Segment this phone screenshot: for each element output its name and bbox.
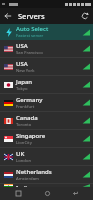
button[interactable]: Auto Select	[0, 24, 93, 40]
staticText: Toronto	[16, 122, 32, 128]
staticText: India	[16, 184, 31, 187]
staticText: New York	[16, 68, 35, 74]
staticText: Germany	[16, 96, 43, 104]
staticText: Frankfurt	[16, 104, 35, 110]
staticText: Servers	[18, 11, 45, 21]
button[interactable]: Japan	[0, 76, 93, 93]
staticText: San Francisco	[16, 50, 43, 56]
staticText: Canada	[16, 114, 38, 122]
button[interactable]: India	[0, 184, 93, 187]
staticText: USA	[16, 60, 28, 68]
button[interactable]: Refresh	[77, 8, 93, 24]
staticText: Singapore	[16, 132, 46, 140]
staticText: London	[16, 158, 32, 164]
button[interactable]: Home	[37, 187, 57, 200]
staticText: USA	[16, 42, 28, 50]
staticText: Tokyo	[16, 86, 28, 92]
staticText: LionCity	[16, 140, 32, 146]
staticText: Amsterdam	[16, 176, 39, 182]
button[interactable]: USA	[0, 40, 93, 57]
staticText: UK	[16, 150, 25, 158]
button[interactable]: Singapore	[0, 130, 93, 147]
button[interactable]: Netherlands	[0, 166, 93, 183]
staticText: Japan	[16, 78, 33, 86]
staticText: Fastest server	[16, 33, 44, 39]
staticText: Auto Select	[16, 25, 49, 33]
staticText: Netherlands	[16, 168, 52, 176]
button[interactable]: UK	[0, 148, 93, 165]
button[interactable]: Germany	[0, 94, 93, 111]
button[interactable]: Recents	[8, 187, 28, 200]
button[interactable]: Back	[0, 8, 16, 24]
button[interactable]: Canada	[0, 112, 93, 129]
button[interactable]: Back	[65, 187, 85, 200]
button[interactable]: USA	[0, 58, 93, 75]
